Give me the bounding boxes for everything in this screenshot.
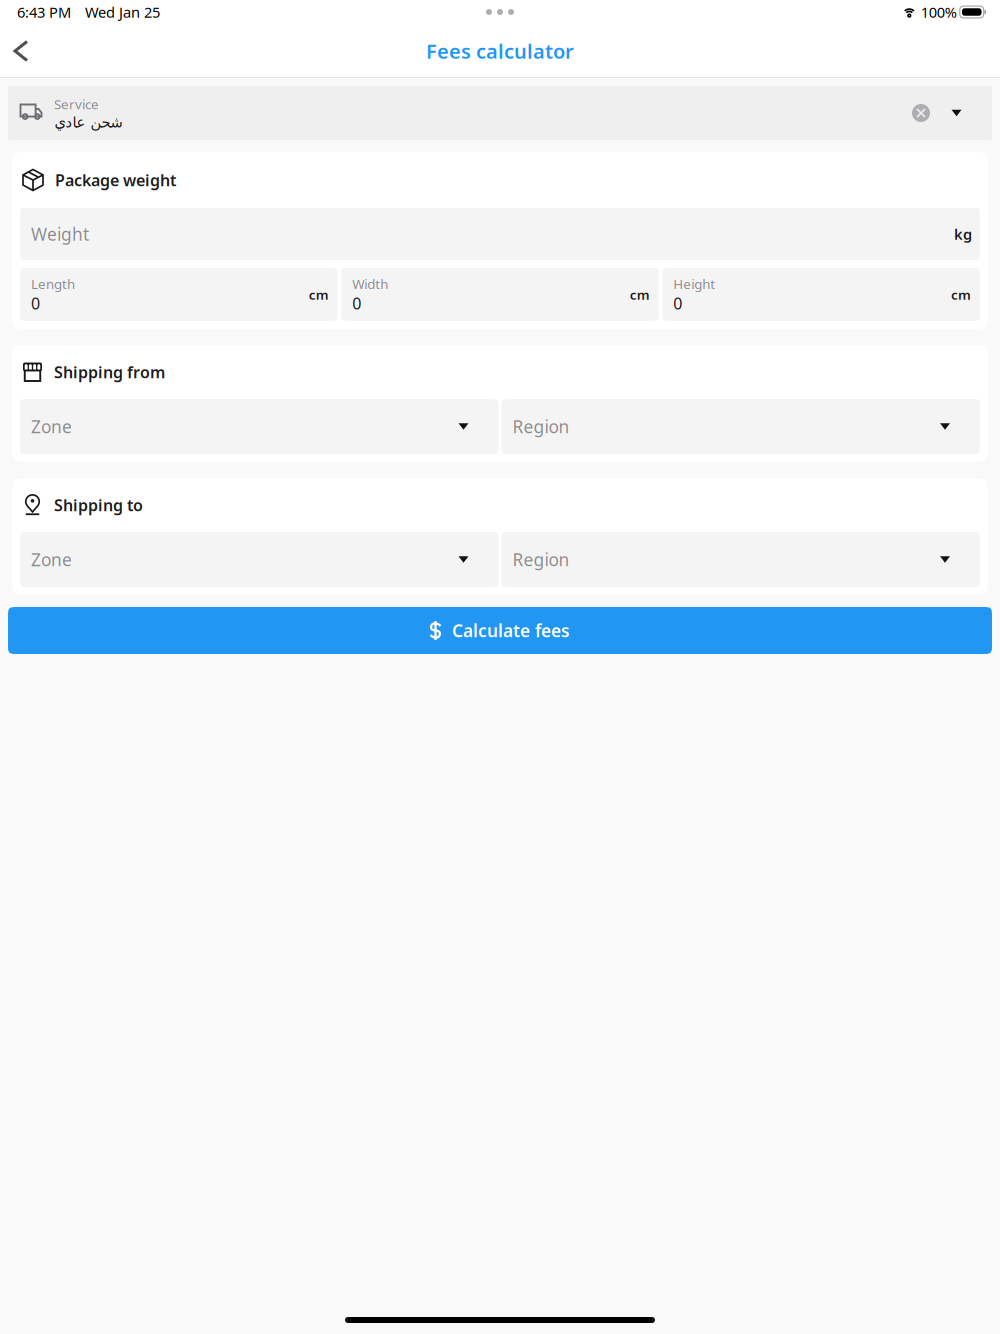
button[interactable]: Region <box>501 532 980 587</box>
staticText: Region <box>512 415 569 438</box>
staticText: cm <box>951 286 971 303</box>
staticText: Wed Jan 25 <box>85 2 160 22</box>
button[interactable]: Zone <box>20 399 498 454</box>
button[interactable]: Zone <box>20 532 498 587</box>
button[interactable]: Back <box>0 24 42 78</box>
staticText: 6:43 PM <box>17 2 71 22</box>
staticText: Shipping to <box>54 494 143 516</box>
staticText: cm <box>630 286 650 303</box>
staticText: 0 <box>352 293 361 314</box>
staticText: Weight <box>31 222 89 245</box>
staticText: 0 <box>31 293 40 314</box>
staticText: Fees calculator <box>426 38 574 64</box>
staticText: Shipping from <box>54 361 165 383</box>
button[interactable]: Service <box>0 86 1000 140</box>
staticText: Width <box>352 275 388 293</box>
staticText: Length <box>31 275 75 293</box>
staticText: kg <box>954 224 972 244</box>
staticText: Zone <box>31 415 72 438</box>
button[interactable]: Height <box>662 268 980 321</box>
staticText: Service <box>54 95 99 113</box>
staticText: Height <box>673 275 715 293</box>
staticText: شحن عادي <box>54 114 122 131</box>
staticText: Zone <box>31 548 72 571</box>
button[interactable]: Weight <box>20 208 980 260</box>
staticText: 100% <box>921 2 957 22</box>
staticText: Package weight <box>55 169 176 191</box>
button[interactable]: Calculate fees <box>0 607 1000 654</box>
button[interactable]: Region <box>501 399 980 454</box>
button[interactable]: Width <box>341 268 659 321</box>
staticText: 0 <box>673 293 682 314</box>
button[interactable]: Length <box>20 268 338 321</box>
staticText: cm <box>309 286 329 303</box>
staticText: Calculate fees <box>452 619 570 642</box>
staticText: Region <box>512 548 569 571</box>
